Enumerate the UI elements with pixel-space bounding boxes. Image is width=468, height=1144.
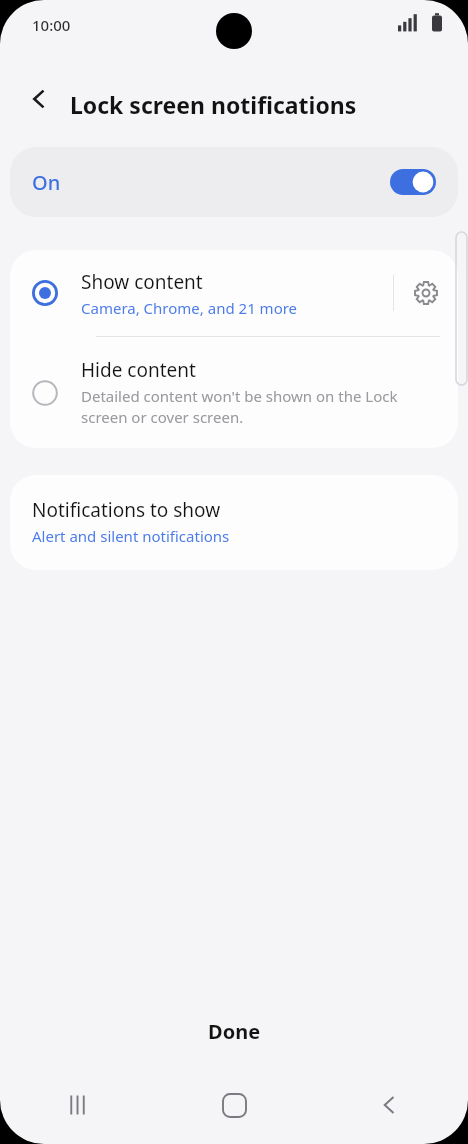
button[interactable]: Settings for show content xyxy=(394,261,458,325)
staticText: Done xyxy=(208,1018,261,1045)
staticText: Show content xyxy=(81,269,203,295)
button[interactable]: Recent apps xyxy=(0,1066,156,1144)
staticText: On xyxy=(32,169,61,196)
button[interactable]: Back xyxy=(312,1066,468,1144)
button[interactable]: Done xyxy=(182,1010,287,1053)
staticText: Detailed content won't be shown on the L… xyxy=(81,386,436,428)
staticText: Alert and silent notifications xyxy=(32,526,230,546)
button[interactable]: Notifications to show xyxy=(10,475,458,570)
button[interactable]: Hide content xyxy=(10,337,458,448)
staticText: Camera, Chrome, and 21 more xyxy=(81,298,298,318)
staticText: Lock screen notifications xyxy=(70,89,357,120)
button[interactable]: Back xyxy=(16,75,64,123)
staticText: Hide content xyxy=(81,357,196,383)
staticText: Notifications to show xyxy=(32,497,221,523)
button[interactable]: On xyxy=(10,147,458,217)
button[interactable]: Show content xyxy=(10,250,458,336)
button[interactable]: Home xyxy=(156,1066,312,1144)
staticText: 10:00 xyxy=(32,15,71,35)
